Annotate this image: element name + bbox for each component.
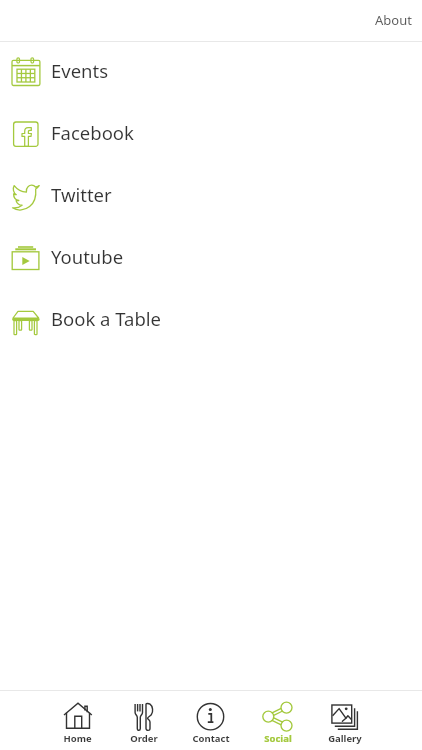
button[interactable]: Twitter <box>0 167 422 229</box>
button[interactable]: Order <box>110 691 177 750</box>
button[interactable]: About <box>361 6 422 38</box>
staticText: Twitter <box>51 182 112 207</box>
button[interactable]: Events <box>0 43 422 105</box>
staticText: Events <box>51 58 109 83</box>
staticText: Gallery <box>328 732 362 745</box>
staticText: Order <box>130 732 158 745</box>
button[interactable]: Youtube <box>0 229 422 291</box>
button[interactable]: Facebook <box>0 105 422 167</box>
button[interactable]: Gallery <box>311 691 378 750</box>
button[interactable]: Social <box>244 691 311 750</box>
staticText: Social <box>264 732 292 745</box>
button[interactable]: Book a Table <box>0 291 422 353</box>
staticText: Facebook <box>51 120 134 145</box>
staticText: About <box>375 11 412 29</box>
button[interactable]: Home <box>44 691 110 750</box>
staticText: Youtube <box>51 244 124 269</box>
staticText: Contact <box>192 732 230 745</box>
staticText: Book a Table <box>51 306 162 331</box>
button[interactable]: Contact <box>177 691 244 750</box>
staticText: Home <box>63 732 92 745</box>
